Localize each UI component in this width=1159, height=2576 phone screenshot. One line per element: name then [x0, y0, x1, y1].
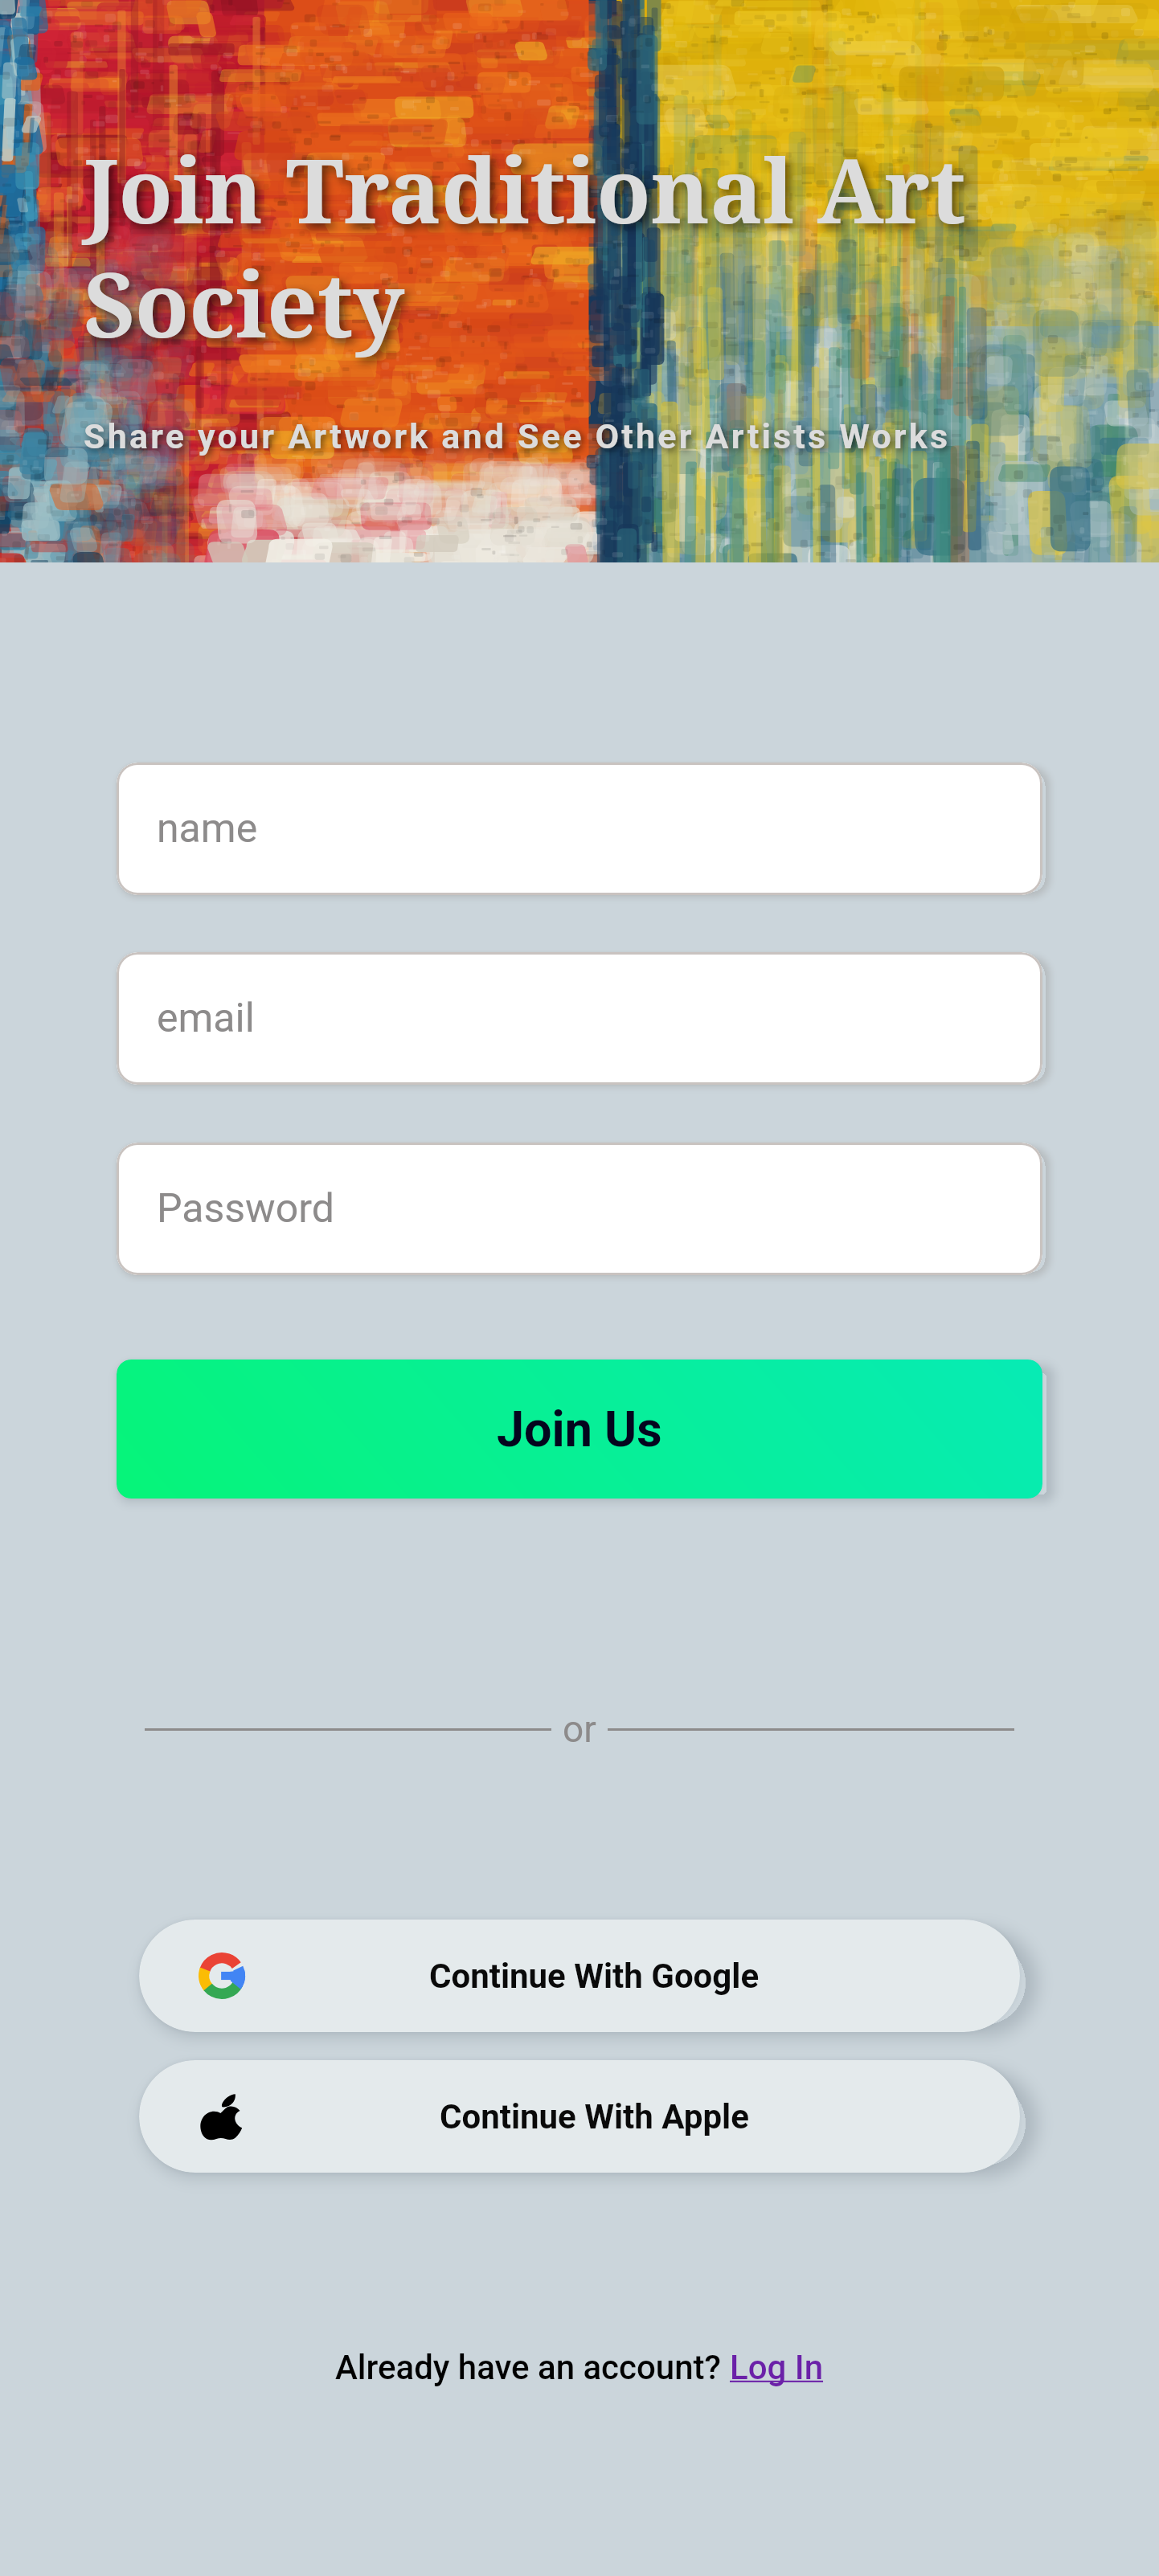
button[interactable]: Join Us [117, 1360, 1042, 1499]
staticText: Join Us [497, 1400, 662, 1458]
button[interactable]: Continue With Google [139, 1920, 1020, 2032]
button[interactable]: email [117, 952, 1042, 1085]
staticText: Share your Artwork and See Other Artists… [84, 416, 951, 456]
button[interactable]: Continue With Apple [139, 2060, 1020, 2173]
button[interactable]: Log In [730, 2348, 824, 2387]
staticText: name [157, 805, 258, 853]
staticText: Join Traditional Art Society [84, 129, 1095, 363]
staticText: or [563, 1707, 596, 1751]
staticText: Already have an account? [335, 2348, 730, 2387]
staticText: Password [157, 1185, 334, 1233]
staticText: email [157, 995, 255, 1042]
button[interactable]: name [117, 763, 1042, 895]
button[interactable]: Password [117, 1143, 1042, 1275]
staticText: Continue With Apple [440, 2097, 749, 2136]
staticText: Continue With Google [429, 1957, 760, 1996]
